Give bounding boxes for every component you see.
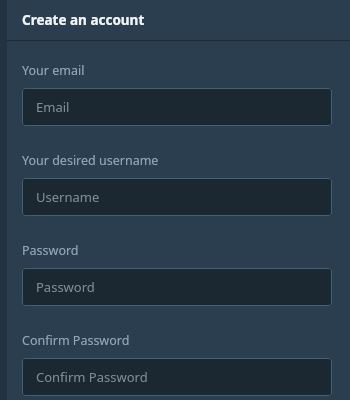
button[interactable]: Email [22,88,332,126]
staticText: Confirm Password [22,332,130,349]
staticText: Your desired username [22,152,159,169]
staticText: Confirm Password [36,368,148,386]
staticText: Email [36,98,70,116]
staticText: Username [36,188,100,206]
button[interactable]: Confirm Password [22,358,332,396]
button[interactable]: Password [22,268,332,306]
button[interactable]: Username [22,178,332,216]
staticText: Your email [22,62,85,79]
staticText: Create an account [22,11,145,29]
staticText: Password [22,242,79,259]
staticText: Password [36,278,95,296]
